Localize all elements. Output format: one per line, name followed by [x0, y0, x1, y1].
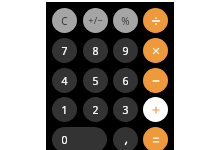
button[interactable]: 5 — [83, 68, 108, 93]
button[interactable]: 4 — [52, 68, 77, 93]
button[interactable]: Equals — [143, 127, 168, 150]
button[interactable]: Clear — [52, 8, 77, 33]
button[interactable]: Plus minus — [83, 8, 108, 33]
button[interactable]: 9 — [113, 38, 138, 63]
staticText: 4 — [61, 74, 68, 88]
staticText: 3 — [122, 103, 129, 117]
button[interactable]: Divide — [143, 8, 168, 33]
staticText: C — [61, 14, 68, 28]
button[interactable]: 2 — [83, 97, 108, 122]
button[interactable]: Minus — [143, 68, 168, 93]
staticText: 8 — [92, 44, 99, 58]
staticText: 7 — [61, 44, 68, 58]
staticText: 0 — [61, 133, 68, 147]
button[interactable]: Decimal point — [113, 127, 138, 150]
button[interactable]: Multiply — [143, 38, 168, 63]
staticText: 1 — [61, 103, 68, 117]
staticText: 5 — [92, 74, 99, 88]
staticText: +/− — [88, 14, 103, 27]
staticText: % — [121, 14, 130, 28]
button[interactable]: 3 — [113, 97, 138, 122]
staticText: 9 — [122, 44, 129, 58]
staticText: 2 — [92, 103, 99, 117]
button[interactable]: Plus — [143, 97, 168, 122]
staticText: 6 — [122, 74, 129, 88]
button[interactable]: 1 — [52, 97, 77, 122]
button[interactable]: Percent — [113, 8, 138, 33]
button[interactable]: 7 — [52, 38, 77, 63]
button[interactable]: 0 — [52, 127, 107, 150]
button[interactable]: 6 — [113, 68, 138, 93]
button[interactable]: 8 — [83, 38, 108, 63]
